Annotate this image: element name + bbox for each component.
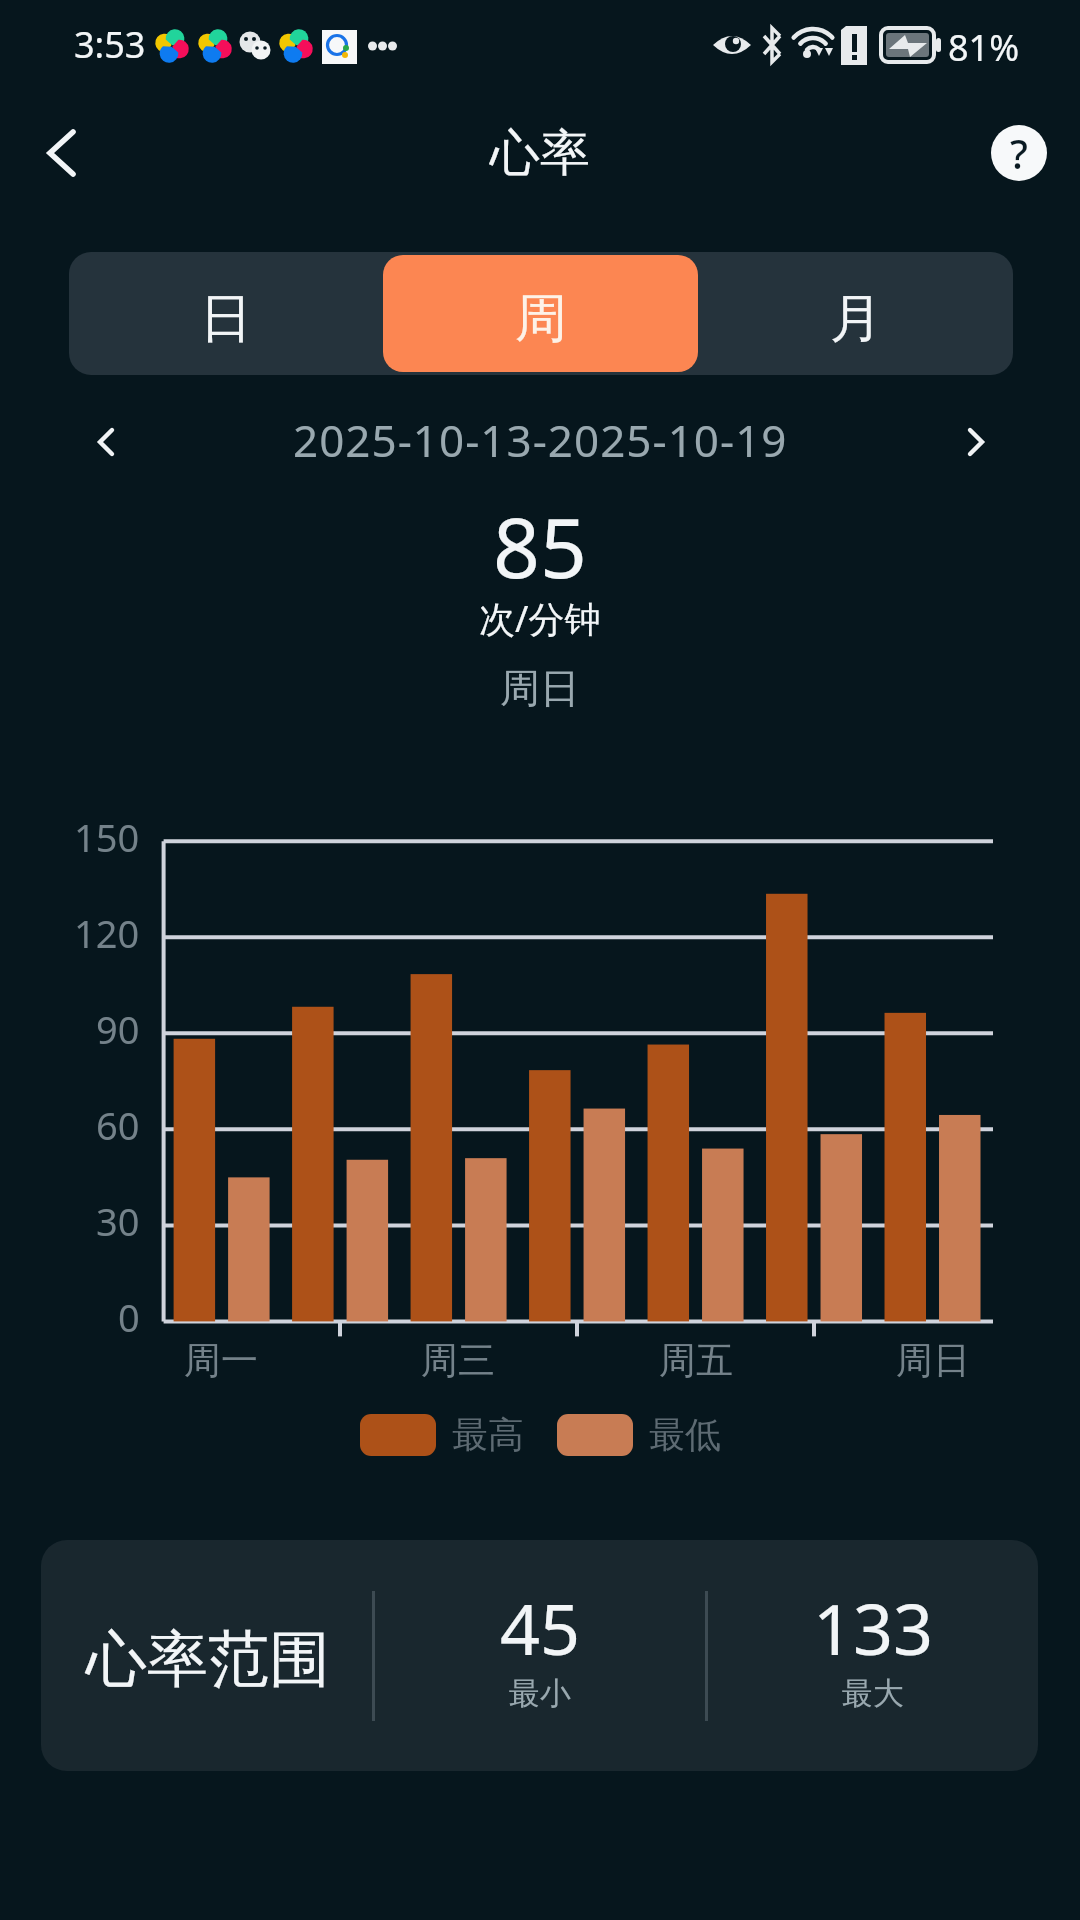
staticText: 周五	[659, 1337, 733, 1384]
button[interactable]: Next	[950, 407, 1020, 477]
staticText: 心率	[490, 122, 590, 185]
staticText: 150	[74, 811, 140, 863]
staticText: 周日	[896, 1337, 970, 1384]
staticText: 周三	[421, 1337, 495, 1384]
staticText: 最大	[842, 1674, 904, 1713]
staticText: 45	[500, 1580, 581, 1675]
button[interactable]: Back	[10, 113, 90, 193]
button[interactable]: 心率范围	[41, 1540, 1038, 1771]
staticText: 60	[96, 1099, 140, 1151]
button[interactable]: 周	[383, 255, 698, 372]
button[interactable]: Previous	[70, 407, 140, 477]
staticText: 日	[200, 286, 252, 352]
staticText: 2025-10-13-2025-10-19	[293, 410, 788, 470]
button[interactable]: 月	[698, 255, 1013, 372]
staticText: 周一	[184, 1337, 258, 1384]
staticText: 120	[74, 907, 140, 959]
staticText: 85	[493, 490, 587, 602]
staticText: 最小	[509, 1674, 571, 1713]
staticText: 133	[813, 1580, 934, 1675]
button[interactable]: 日	[69, 255, 383, 372]
staticText: 次/分钟	[479, 594, 601, 643]
staticText: 最高	[452, 1412, 524, 1457]
button[interactable]: Help	[991, 125, 1047, 181]
staticText: 周	[515, 286, 567, 352]
staticText: 3:53	[74, 20, 146, 69]
staticText: 90	[96, 1003, 140, 1055]
staticText: 月	[830, 286, 882, 352]
staticText: 81%	[948, 23, 1020, 72]
staticText: 0	[118, 1291, 140, 1343]
staticText: ?	[1010, 126, 1028, 180]
staticText: 心率范围	[86, 1621, 330, 1698]
staticText: 最低	[649, 1412, 721, 1457]
staticText: 周日	[500, 663, 580, 713]
staticText: 30	[96, 1195, 140, 1247]
